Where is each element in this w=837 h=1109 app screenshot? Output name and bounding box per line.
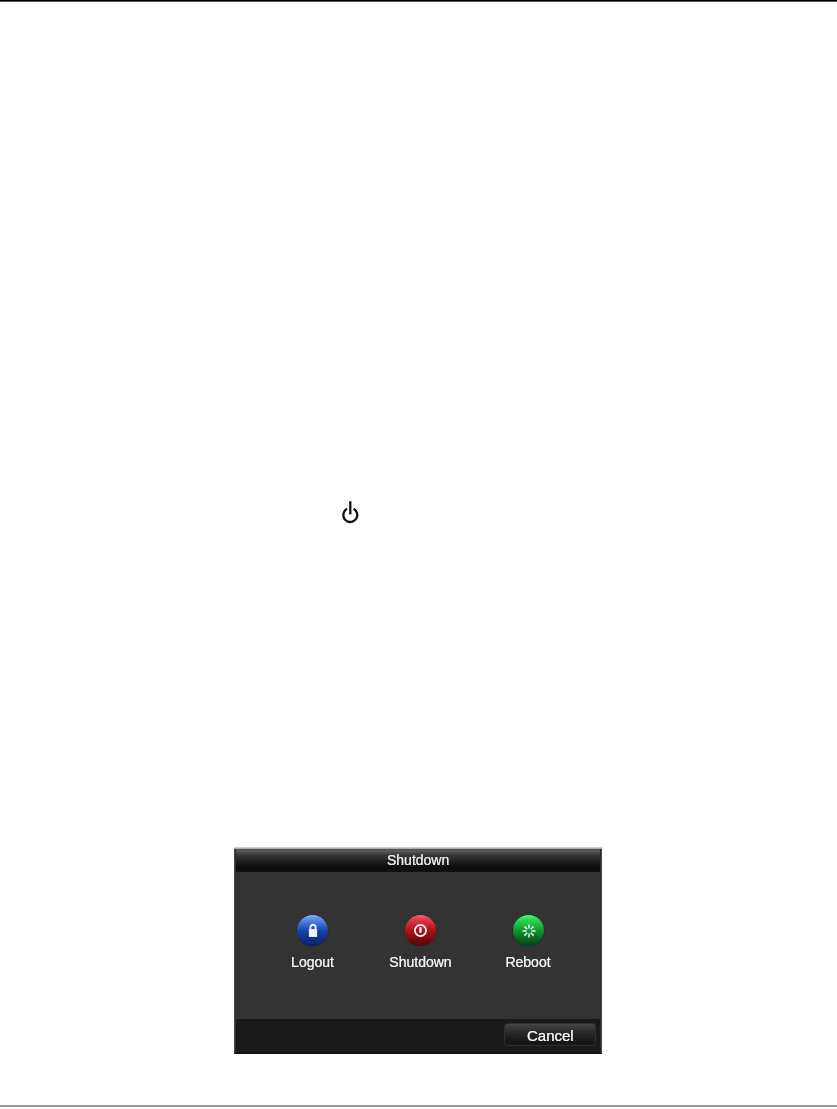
staticText: Logout bbox=[291, 954, 334, 970]
other: Reboot bbox=[521, 923, 537, 939]
staticText: Reboot bbox=[505, 954, 551, 970]
other: Logout bbox=[306, 924, 320, 938]
staticText: Shutdown bbox=[389, 954, 452, 970]
staticText: Shutdown bbox=[387, 852, 450, 868]
other: Shutdown bbox=[412, 922, 429, 939]
button[interactable]: Cancel bbox=[505, 1024, 595, 1045]
staticText: Cancel bbox=[527, 1027, 574, 1044]
other: Power bbox=[336, 497, 364, 525]
button[interactable]: Logout bbox=[262, 914, 362, 970]
button[interactable]: Shutdown bbox=[370, 914, 470, 970]
button[interactable]: Reboot bbox=[478, 914, 578, 970]
